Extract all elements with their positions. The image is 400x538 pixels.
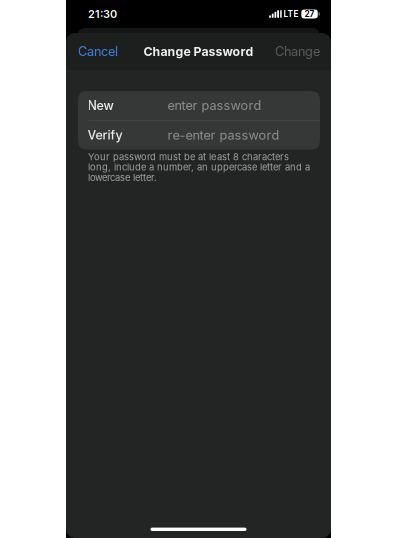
staticText: Change (275, 44, 320, 59)
staticText: LTE (283, 9, 298, 19)
button[interactable]: Verify (78, 121, 320, 150)
staticText: Verify (87, 128, 122, 143)
button[interactable]: New (78, 91, 320, 120)
staticText: New (87, 98, 113, 113)
button[interactable]: Cancel (66, 35, 128, 68)
staticText: 21:30 (88, 7, 117, 21)
staticText: enter password (167, 98, 261, 113)
staticText: Your password must be at least 8 charact… (88, 152, 310, 183)
staticText: Change Password (143, 44, 253, 59)
staticText: Cancel (78, 44, 118, 59)
staticText: re-enter password (167, 127, 279, 143)
staticText: 27 (305, 9, 315, 19)
button[interactable]: Change (265, 35, 331, 68)
